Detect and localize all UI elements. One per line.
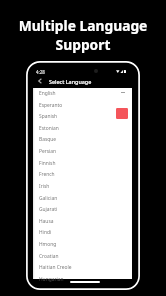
staticText: Hungarian: [39, 276, 64, 283]
staticText: Croatian: [39, 253, 59, 260]
staticText: Hindi: [39, 229, 52, 236]
button[interactable]: Finnish: [33, 158, 132, 170]
button[interactable]: Estonian: [33, 123, 132, 135]
button[interactable]: Basque: [33, 134, 132, 146]
button[interactable]: Esperanto: [33, 100, 132, 112]
staticText: Hmong: [39, 241, 57, 248]
button[interactable]: Croatian: [33, 251, 132, 263]
button[interactable]: Hindi: [33, 227, 132, 239]
staticText: Galician: [39, 195, 58, 202]
button[interactable]: Hmong: [33, 239, 132, 251]
button[interactable]: Spanish: [33, 111, 132, 123]
staticText: Esperanto: [39, 102, 63, 109]
staticText: Support: [0, 35, 166, 54]
button[interactable]: Hausa: [33, 216, 132, 228]
staticText: Persian: [39, 148, 57, 155]
staticText: Estonian: [39, 125, 59, 132]
button[interactable]: English: [33, 88, 132, 100]
staticText: Select Language: [49, 78, 92, 85]
button[interactable]: Persian: [33, 146, 132, 158]
button[interactable]: Galician: [33, 193, 132, 205]
button[interactable]: [116, 108, 128, 119]
button[interactable]: Gujarati: [33, 204, 132, 216]
staticText: Basque: [39, 136, 57, 143]
button[interactable]: Haitian Creole: [33, 262, 132, 274]
button[interactable]: Hungarian: [33, 274, 132, 286]
staticText: Spanish: [39, 113, 58, 120]
staticText: Gujarati: [39, 206, 58, 213]
button[interactable]: Back: [35, 76, 45, 86]
staticText: Haitian Creole: [39, 264, 72, 271]
staticText: Multiple Language: [0, 16, 166, 35]
staticText: Irish: [39, 183, 50, 190]
staticText: French: [39, 171, 55, 178]
button[interactable]: French: [33, 169, 132, 181]
staticText: English: [39, 90, 56, 97]
staticText: Finnish: [39, 160, 56, 167]
button[interactable]: Irish: [33, 181, 132, 193]
staticText: Hausa: [39, 218, 54, 225]
staticText: 4:28: [36, 69, 45, 75]
